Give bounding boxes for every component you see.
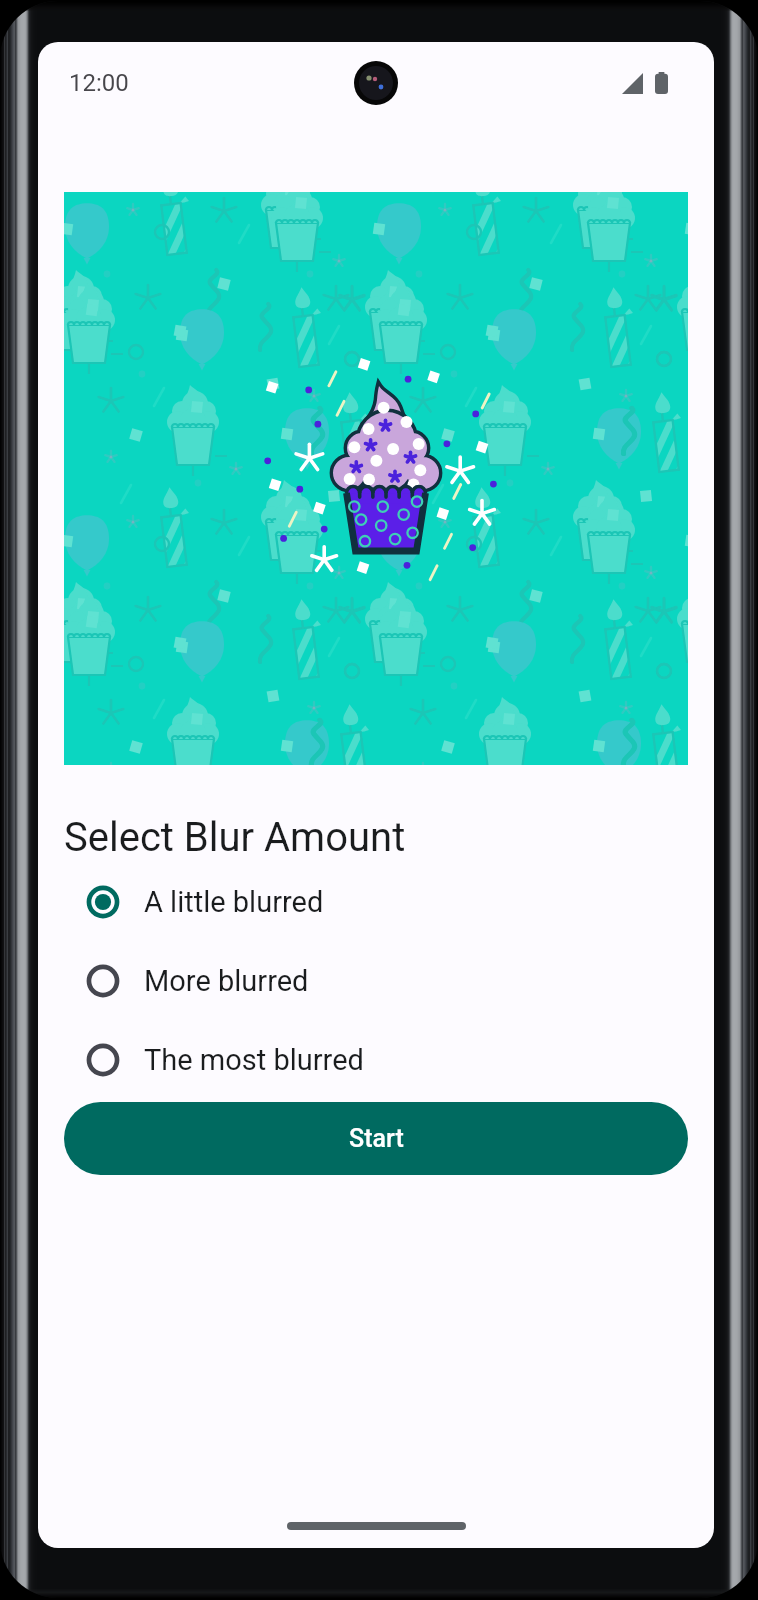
staticText: Start bbox=[349, 1124, 404, 1153]
staticText: The most blurred bbox=[144, 1043, 364, 1077]
staticText: Select Blur Amount bbox=[64, 814, 406, 861]
button[interactable]: A little blurred bbox=[38, 862, 714, 941]
button[interactable]: Home bbox=[287, 1518, 466, 1534]
button[interactable]: The most blurred bbox=[38, 1020, 714, 1099]
staticText: 12:00 bbox=[69, 69, 129, 97]
staticText: More blurred bbox=[144, 964, 309, 998]
other: Cupcake image bbox=[64, 192, 688, 765]
button[interactable]: More blurred bbox=[38, 941, 714, 1020]
button[interactable]: Start bbox=[64, 1102, 688, 1175]
staticText: A little blurred bbox=[144, 885, 324, 919]
